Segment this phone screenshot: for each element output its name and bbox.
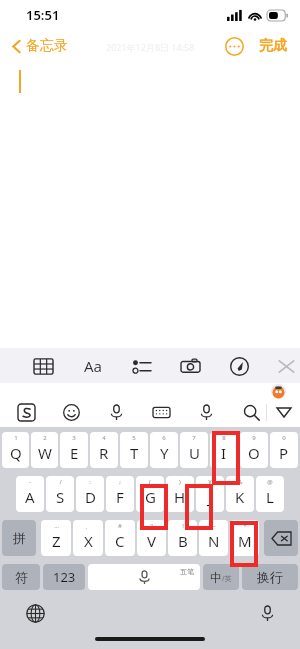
button[interactable]: … <box>41 520 71 556</box>
staticText: K <box>235 487 245 507</box>
staticText: A <box>25 487 35 507</box>
staticText: 1 <box>14 434 18 442</box>
staticText: ( <box>149 478 151 486</box>
staticText: … <box>54 522 59 530</box>
staticText: V <box>147 531 157 551</box>
button[interactable]: ; <box>106 476 134 512</box>
button[interactable]: Hide keyboard <box>267 397 300 427</box>
staticText: ; <box>119 478 121 486</box>
button[interactable]: / <box>46 476 74 512</box>
button[interactable]: Backspace <box>264 520 298 556</box>
button[interactable]: ! <box>168 520 197 556</box>
button[interactable]: 0 <box>270 432 298 468</box>
staticText: 拼 <box>13 530 26 546</box>
button[interactable]: : <box>76 476 104 512</box>
staticText: ? <box>150 522 153 530</box>
staticText: 换行 <box>257 569 283 585</box>
staticText: H <box>174 487 186 507</box>
staticText: P <box>279 443 289 463</box>
button[interactable]: 换行 <box>242 564 298 590</box>
staticText: Y <box>160 443 169 463</box>
button[interactable]: Close <box>272 351 300 381</box>
button[interactable]: Camera <box>175 351 205 381</box>
button[interactable]: * <box>230 520 259 556</box>
button[interactable]: 5 <box>120 432 148 468</box>
button[interactable]: Markup <box>224 351 254 381</box>
button[interactable]: 123 <box>43 564 85 590</box>
staticText: & <box>238 478 243 486</box>
button[interactable]: More options <box>221 33 247 59</box>
staticText: 123 <box>53 568 76 586</box>
staticText: 6 <box>162 434 166 442</box>
button[interactable]: Sogou <box>11 397 41 427</box>
button[interactable]: Table <box>28 351 58 381</box>
staticText: / <box>59 478 62 486</box>
staticText: /英 <box>222 574 232 584</box>
button[interactable]: Change language <box>22 600 48 626</box>
staticText: ! <box>182 522 184 530</box>
button[interactable]: 8 <box>210 432 238 468</box>
button[interactable]: 备忘录 <box>8 33 72 59</box>
button[interactable]: & <box>226 476 254 512</box>
staticText: 3 <box>72 434 76 442</box>
staticText: 2 <box>43 434 47 442</box>
button[interactable]: # <box>105 520 135 556</box>
button[interactable]: 1 <box>2 432 29 468</box>
button[interactable]: ) <box>166 476 194 512</box>
button[interactable]: 2 <box>31 432 58 468</box>
button[interactable]: Search <box>236 397 266 427</box>
staticText: 备忘录 <box>26 37 68 55</box>
button[interactable]: Voice input <box>101 397 131 427</box>
button[interactable]: Emoji <box>56 397 86 427</box>
button[interactable]: - <box>16 476 44 512</box>
staticText: N <box>208 531 220 551</box>
staticText: 15:51 <box>26 6 60 24</box>
staticText: I <box>221 443 227 463</box>
staticText: S <box>56 487 65 507</box>
button[interactable]: Mascot <box>271 384 286 399</box>
staticText: * <box>243 522 247 530</box>
staticText: O <box>248 443 260 463</box>
button[interactable]: Space <box>88 564 200 590</box>
staticText: R <box>99 443 109 463</box>
staticText: C <box>115 531 125 551</box>
button[interactable]: Checklist <box>126 351 156 381</box>
staticText: M <box>238 531 252 551</box>
staticText: 五笔 <box>180 567 194 576</box>
staticText: E <box>70 443 79 463</box>
button[interactable]: Dictation <box>254 600 280 626</box>
button[interactable]: ~ <box>199 520 228 556</box>
button[interactable]: 3 <box>60 432 88 468</box>
staticText: L <box>266 487 274 507</box>
staticText: ) <box>179 478 181 486</box>
staticText: G <box>145 487 156 507</box>
button[interactable]: 6 <box>150 432 178 468</box>
button[interactable]: @ <box>256 476 284 512</box>
staticText: J <box>208 487 213 507</box>
button[interactable]: 7 <box>180 432 208 468</box>
staticText: 符 <box>15 569 28 585</box>
button[interactable]: ¥ <box>196 476 224 512</box>
staticText: ¥ <box>208 478 212 486</box>
button[interactable]: ? <box>137 520 166 556</box>
button[interactable]: 拼 <box>2 520 36 556</box>
button[interactable]: 、 <box>73 520 103 556</box>
staticText: @ <box>267 478 273 486</box>
button[interactable]: 4 <box>90 432 118 468</box>
button[interactable]: Aa <box>78 351 108 381</box>
button[interactable]: Keyboard <box>146 397 176 427</box>
staticText: 4 <box>102 434 106 442</box>
button[interactable]: 中 <box>203 564 239 590</box>
staticText: U <box>189 443 200 463</box>
button[interactable]: 完成 <box>256 33 290 59</box>
staticText: 7 <box>192 434 196 442</box>
button[interactable]: ( <box>136 476 164 512</box>
button[interactable]: Handwriting <box>191 397 221 427</box>
button[interactable]: 符 <box>2 564 40 590</box>
staticText: X <box>84 531 93 551</box>
staticText: 2021年12月8日 14:58 <box>106 41 195 53</box>
staticText: D <box>85 487 96 507</box>
staticText: T <box>130 443 139 463</box>
button[interactable]: 9 <box>240 432 268 468</box>
staticText: 9 <box>252 434 256 442</box>
